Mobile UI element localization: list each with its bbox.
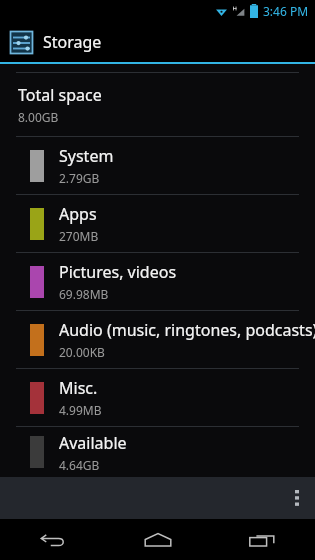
staticText: Misc. <box>59 377 98 399</box>
staticText: Pictures, videos <box>59 261 177 283</box>
button[interactable]: Back <box>0 519 105 560</box>
staticText: 2.79GB <box>59 170 100 186</box>
staticText: Apps <box>59 203 97 225</box>
button[interactable]: Pictures, videos <box>0 253 315 310</box>
staticText: 3:46 PM <box>263 3 309 19</box>
button[interactable]: Audio (music, ringtones, podcasts) <box>0 311 315 368</box>
staticText: Total space <box>18 84 102 106</box>
button[interactable]: Total space <box>0 73 315 136</box>
button[interactable]: Home <box>105 519 210 560</box>
other: Settings <box>9 30 34 55</box>
button[interactable]: Recent apps <box>210 519 315 560</box>
staticText: 270MB <box>59 228 99 244</box>
staticText: Audio (music, ringtones, podcasts) <box>59 319 315 341</box>
button[interactable]: Misc. <box>0 369 315 426</box>
staticText: 20.00KB <box>59 344 105 360</box>
staticText: 8.00GB <box>18 109 59 125</box>
button[interactable]: Apps <box>0 195 315 252</box>
button[interactable]: More options <box>279 477 315 519</box>
button[interactable]: System <box>0 137 315 194</box>
staticText: Available <box>59 432 127 454</box>
staticText: System <box>59 145 114 167</box>
button[interactable]: Settings <box>0 22 315 62</box>
staticText: 4.99MB <box>59 402 102 418</box>
staticText: 4.64GB <box>59 457 100 473</box>
staticText: 69.98MB <box>59 286 109 302</box>
staticText: Storage <box>43 31 102 53</box>
button[interactable]: Available <box>0 427 315 477</box>
